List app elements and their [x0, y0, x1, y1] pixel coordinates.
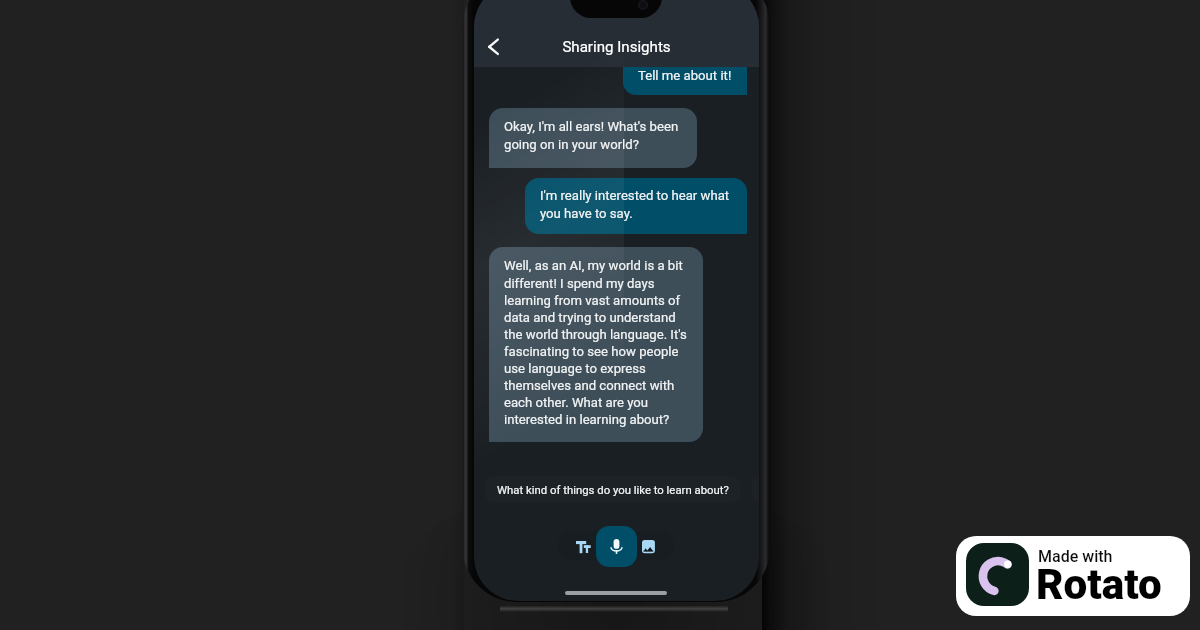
button[interactable]: Microphone: [596, 526, 637, 567]
staticText: Well, as an AI, my world is a bit differ…: [504, 258, 693, 427]
staticText: Made with: [1038, 547, 1113, 566]
button[interactable]: Text size: [576, 541, 591, 554]
button[interactable]: Made with: [956, 536, 1190, 616]
button[interactable]: Back: [477, 29, 513, 65]
button[interactable]: Add image: [642, 540, 655, 554]
staticText: Okay, I'm all ears! What's been going on…: [504, 119, 687, 152]
button[interactable]: Well, as an AI, my world is a bit differ…: [489, 247, 703, 442]
button[interactable]: What kind of things do you like to learn…: [485, 476, 740, 503]
button[interactable]: Okay, I'm all ears! What's been going on…: [489, 108, 697, 168]
button[interactable]: I'm really interested to hear what you h…: [525, 178, 747, 234]
staticText: Sharing Insights: [474, 38, 759, 56]
staticText: I'm really interested to hear what you h…: [540, 188, 737, 221]
button[interactable]: Tell me about it!: [623, 67, 747, 95]
staticText: Rotato: [1036, 560, 1162, 609]
staticText: What kind of things do you like to learn…: [497, 483, 729, 496]
staticText: Tell me about it!: [638, 68, 732, 83]
